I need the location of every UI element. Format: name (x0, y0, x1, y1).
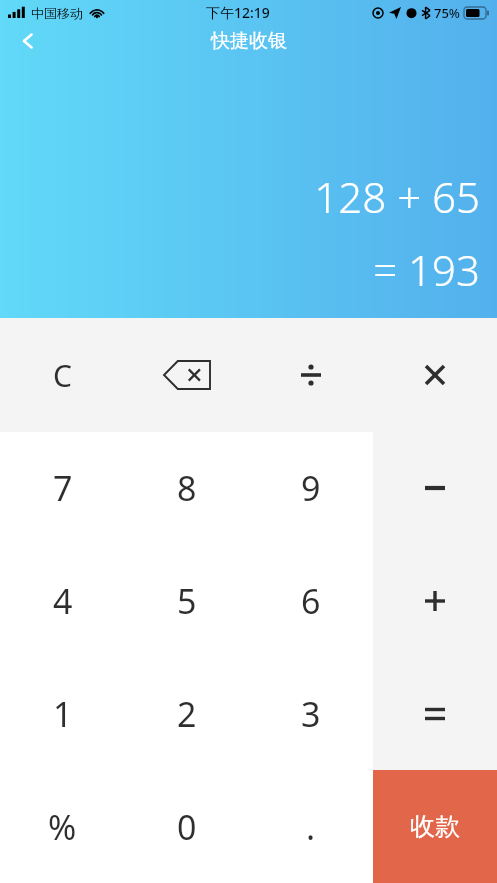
staticText: 0 (177, 804, 197, 850)
staticText: % (48, 804, 77, 850)
button[interactable]: 4 (0, 544, 125, 657)
staticText: = 193 (0, 241, 480, 298)
button[interactable]: 0 (125, 770, 249, 883)
staticText: 6 (301, 578, 321, 624)
staticText: 7 (53, 465, 73, 511)
button[interactable]: 8 (125, 432, 249, 544)
button[interactable]: . (249, 770, 373, 883)
button[interactable]: 1 (0, 657, 125, 770)
staticText: . (306, 804, 316, 850)
staticText: 快捷收银 (211, 29, 287, 53)
staticText: 128 + 65 (0, 168, 480, 225)
staticText: 下午12:19 (206, 3, 270, 22)
button[interactable]: 2 (125, 657, 249, 770)
button[interactable]: 5 (125, 544, 249, 657)
staticText: 75% (434, 4, 460, 22)
button[interactable]: Multiply (373, 318, 497, 432)
staticText: 中国移动 (31, 5, 83, 21)
staticText: 4 (53, 578, 73, 624)
button[interactable]: Backspace (125, 318, 249, 432)
button[interactable]: 收款 (373, 770, 497, 883)
button[interactable]: Minus (373, 432, 497, 544)
button[interactable]: 3 (249, 657, 373, 770)
staticText: 5 (177, 578, 197, 624)
staticText: 收款 (410, 811, 460, 842)
staticText: 1 (53, 691, 73, 737)
staticText: 8 (177, 465, 197, 511)
staticText: 2 (177, 691, 197, 737)
button[interactable]: C (0, 318, 125, 432)
button[interactable]: Plus (373, 544, 497, 657)
button[interactable]: 6 (249, 544, 373, 657)
button[interactable]: % (0, 770, 125, 883)
staticText: 9 (301, 465, 321, 511)
button[interactable]: Equals (373, 657, 497, 770)
button[interactable]: 7 (0, 432, 125, 544)
staticText: 3 (301, 691, 321, 737)
staticText: C (53, 355, 72, 396)
button[interactable]: Divide (249, 318, 373, 432)
button[interactable]: 9 (249, 432, 373, 544)
button[interactable]: Back (0, 25, 56, 57)
